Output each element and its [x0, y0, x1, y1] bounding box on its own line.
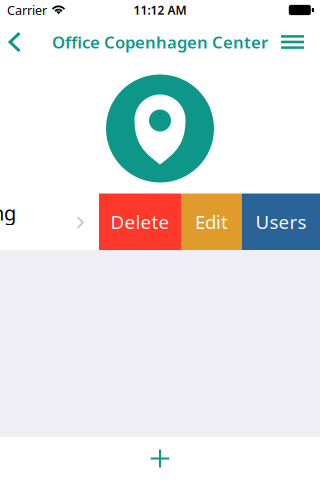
staticText: Carrier	[7, 1, 47, 19]
button[interactable]: Users	[242, 193, 320, 250]
staticText: Edit	[195, 209, 228, 234]
staticText: Delete	[110, 209, 169, 234]
staticText: Users	[255, 209, 306, 234]
button[interactable]: Add	[0, 437, 320, 480]
staticText: 11:12 AM	[133, 2, 186, 18]
button[interactable]: Edit	[181, 193, 242, 250]
button[interactable]: Delete	[99, 193, 181, 250]
button[interactable]: Menu	[269, 21, 320, 63]
staticText: Office Copenhagen Center	[52, 31, 268, 53]
button[interactable]: Back	[0, 20, 31, 63]
staticText: ng	[0, 199, 16, 226]
